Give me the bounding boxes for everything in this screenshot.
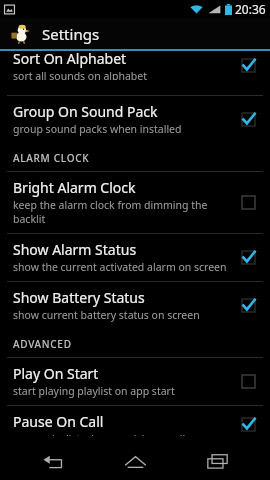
- staticText: Settings: [42, 24, 100, 44]
- button[interactable]: Disabled: [236, 369, 260, 393]
- staticText: start playing playlist on app start: [13, 384, 175, 398]
- button[interactable]: Back: [24, 443, 82, 480]
- button[interactable]: Show Battery Status: [0, 282, 270, 329]
- staticText: keep the alarm clock from dimming the ba…: [13, 198, 230, 226]
- staticText: Play On Start: [13, 364, 99, 383]
- staticText: pause playlist when receiving a call: [13, 432, 186, 436]
- button[interactable]: Play On Start: [0, 358, 270, 405]
- button[interactable]: Enabled: [236, 412, 260, 436]
- staticText: group sound packs when installed: [13, 122, 182, 136]
- button[interactable]: Group On Sound Pack: [0, 96, 270, 143]
- staticText: ALARM CLOCK: [13, 151, 90, 165]
- button[interactable]: Enabled: [236, 293, 260, 317]
- staticText: Show Alarm Status: [13, 240, 137, 259]
- button[interactable]: Enabled: [236, 107, 260, 131]
- button[interactable]: Pause On Call: [0, 406, 270, 443]
- staticText: Show Battery Status: [13, 288, 145, 307]
- button[interactable]: Enabled: [236, 245, 260, 269]
- button[interactable]: Enabled: [236, 53, 260, 77]
- button[interactable]: Home: [106, 443, 164, 480]
- button[interactable]: Disabled: [236, 190, 260, 214]
- staticText: Group On Sound Pack: [13, 102, 158, 121]
- staticText: show the current activated alarm on scre…: [13, 260, 227, 274]
- staticText: Pause On Call: [13, 412, 104, 431]
- button[interactable]: Show Alarm Status: [0, 234, 270, 281]
- staticText: Bright Alarm Clock: [13, 178, 136, 197]
- button[interactable]: Sort On Alphabet: [0, 51, 270, 87]
- staticText: ADVANCED: [13, 337, 72, 351]
- button[interactable]: Recent apps: [188, 443, 246, 480]
- staticText: sort all sounds on alphabet: [13, 69, 148, 80]
- button[interactable]: Bright Alarm Clock: [0, 172, 270, 233]
- staticText: 20:36: [235, 1, 266, 17]
- staticText: Sort On Alphabet: [13, 51, 127, 68]
- staticText: show current battery status on screen: [13, 308, 200, 322]
